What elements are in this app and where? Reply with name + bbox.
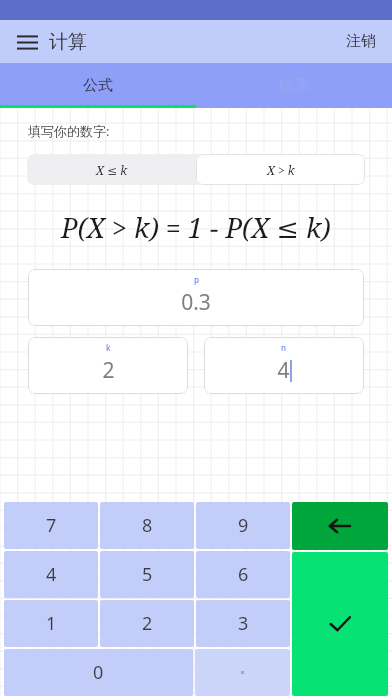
button[interactable]: k <box>28 337 188 394</box>
button[interactable]: 7 <box>4 502 98 549</box>
staticText: 8 <box>142 513 153 538</box>
staticText: 4 <box>277 356 290 385</box>
staticText: 计算 <box>49 30 87 54</box>
staticText: n <box>281 342 287 353</box>
button[interactable]: 6 <box>196 551 290 598</box>
staticText: 结果 <box>279 76 309 95</box>
staticText: 0 <box>93 660 104 685</box>
button[interactable]: 2 <box>100 600 194 647</box>
staticText: 1 <box>46 611 57 636</box>
button[interactable]: 5 <box>100 551 194 598</box>
button[interactable]: X ≤ k <box>27 154 196 185</box>
button[interactable]: 8 <box>100 502 194 549</box>
staticText: 公式 <box>83 76 113 95</box>
button[interactable]: Backspace <box>292 502 388 550</box>
staticText: 填写你的数字: <box>28 122 110 140</box>
button[interactable]: 1 <box>4 600 98 647</box>
staticText: P(X > k) = 1 − P(X ≤ k) <box>61 209 331 246</box>
staticText: k <box>106 342 111 353</box>
staticText: 2 <box>102 356 115 385</box>
staticText: 4 <box>46 562 57 587</box>
staticText: p <box>194 274 199 285</box>
button[interactable]: Confirm <box>292 552 388 696</box>
button[interactable]: X > k <box>196 154 365 185</box>
staticText: 3 <box>238 611 249 636</box>
staticText: X ≤ k <box>96 162 128 178</box>
button[interactable]: 4 <box>4 551 98 598</box>
button[interactable]: 注销 <box>338 26 384 57</box>
staticText: 注销 <box>346 32 376 51</box>
button[interactable]: 0 <box>4 649 193 696</box>
button[interactable]: p <box>28 269 364 326</box>
staticText: X > k <box>267 162 295 178</box>
button[interactable]: n <box>204 337 364 394</box>
staticText: 5 <box>142 562 153 587</box>
staticText: 6 <box>238 562 249 587</box>
staticText: 9 <box>238 513 249 538</box>
staticText: 7 <box>46 513 57 538</box>
staticText: 2 <box>142 611 153 636</box>
staticText: 0.3 <box>181 288 211 317</box>
button[interactable]: 3 <box>196 600 290 647</box>
button[interactable]: 公式 <box>0 63 196 108</box>
button[interactable]: 9 <box>196 502 290 549</box>
button[interactable]: Menu <box>10 25 44 59</box>
